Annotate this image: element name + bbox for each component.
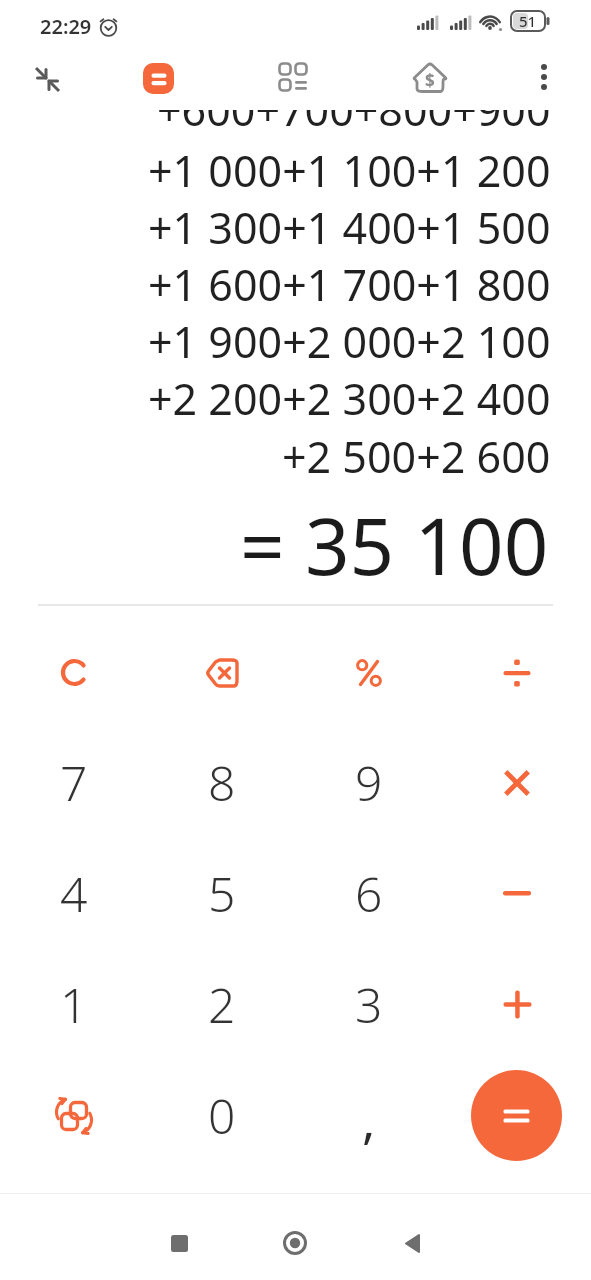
staticText: +1 000+1 100+1 200: [148, 141, 551, 198]
staticText: = 35 100: [240, 492, 549, 592]
staticText: +1 300+1 400+1 500: [148, 198, 551, 255]
staticText: +2 500+2 600: [282, 427, 551, 484]
staticText: 51: [519, 11, 537, 31]
button[interactable]: [443, 838, 591, 949]
button[interactable]: 1: [0, 949, 148, 1060]
staticText: +600+700+800+900: [157, 110, 551, 137]
button[interactable]: 9: [295, 727, 443, 838]
staticText: +1 600+1 700+1 800: [148, 255, 551, 312]
staticText: +2 200+2 300+2 400: [148, 369, 551, 426]
button[interactable]: [0, 617, 148, 728]
staticText: 4: [60, 861, 88, 926]
button[interactable]: 0: [148, 1060, 296, 1171]
button[interactable]: $: [406, 53, 454, 101]
button[interactable]: [0, 1060, 148, 1171]
staticText: 3: [355, 972, 383, 1037]
staticText: 7: [60, 750, 88, 815]
staticText: +1 900+2 000+2 100: [148, 312, 551, 369]
button[interactable]: ,: [295, 1060, 443, 1171]
staticText: 8: [208, 750, 236, 815]
button[interactable]: [23, 55, 71, 103]
staticText: 2: [208, 972, 236, 1037]
button[interactable]: [443, 617, 591, 728]
button[interactable]: [155, 1219, 203, 1267]
button[interactable]: [443, 727, 591, 838]
staticText: 1: [60, 972, 88, 1037]
staticText: 0: [208, 1083, 236, 1148]
button[interactable]: [143, 63, 174, 94]
button[interactable]: [443, 949, 591, 1060]
button[interactable]: [148, 617, 296, 728]
button[interactable]: 3: [295, 949, 443, 1060]
button[interactable]: [271, 1219, 319, 1267]
button[interactable]: 8: [148, 727, 296, 838]
staticText: 22:29: [40, 13, 92, 40]
staticText: 6: [355, 861, 383, 926]
button[interactable]: [520, 53, 568, 101]
button[interactable]: 6: [295, 838, 443, 949]
staticText: $: [425, 69, 435, 92]
button[interactable]: [269, 53, 317, 101]
button[interactable]: 4: [0, 838, 148, 949]
button[interactable]: [388, 1219, 436, 1267]
button[interactable]: 5: [148, 838, 296, 949]
button[interactable]: [295, 617, 443, 728]
staticText: 9: [355, 750, 383, 815]
button[interactable]: 2: [148, 949, 296, 1060]
button[interactable]: 7: [0, 727, 148, 838]
staticText: ,: [362, 1086, 376, 1154]
staticText: 5: [208, 861, 236, 926]
button[interactable]: [471, 1070, 562, 1161]
